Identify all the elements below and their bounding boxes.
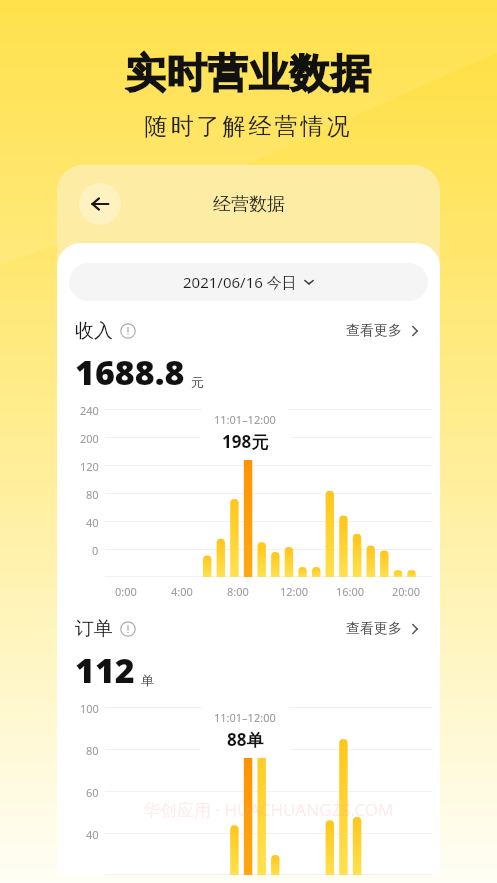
staticText: 0 xyxy=(92,543,99,558)
staticText: 0:00 xyxy=(115,584,137,599)
staticText: 订单 xyxy=(75,617,113,641)
staticText: 80 xyxy=(86,743,99,758)
staticText: 200 xyxy=(80,431,99,446)
button[interactable]: 查看更多 xyxy=(346,322,422,340)
staticText: 2021/06/16 今日 xyxy=(183,272,297,292)
staticText: 随时了解经营情况 xyxy=(0,112,497,141)
staticText: 16:00 xyxy=(336,584,365,599)
staticText: 120 xyxy=(80,459,99,474)
staticText: 20:00 xyxy=(392,584,421,599)
staticText: 11:01–12:00 xyxy=(214,412,276,427)
staticText: 60 xyxy=(86,785,99,800)
staticText: 4:00 xyxy=(171,584,193,599)
staticText: 88单 xyxy=(227,728,264,751)
staticText: 8:00 xyxy=(227,584,249,599)
staticText: 经营数据 xyxy=(213,193,285,216)
button[interactable]: 返回 xyxy=(79,183,121,225)
staticText: 查看更多 xyxy=(346,620,402,638)
staticText: 1688.8 xyxy=(75,349,185,395)
staticText: 查看更多 xyxy=(346,322,402,340)
staticText: 实时营业数据 xyxy=(0,48,497,98)
staticText: 112 xyxy=(75,647,135,693)
staticText: 80 xyxy=(86,487,99,502)
staticText: 收入 xyxy=(75,319,113,343)
staticText: 40 xyxy=(86,827,99,842)
staticText: 华创应用 · HUACHUANGZS.COM xyxy=(143,798,394,821)
staticText: 198元 xyxy=(222,430,269,453)
button[interactable]: 查看更多 xyxy=(346,620,422,638)
staticText: 元 xyxy=(191,374,204,390)
staticText: 11:01–12:00 xyxy=(214,710,276,725)
button[interactable]: 说明 xyxy=(120,323,136,339)
staticText: 40 xyxy=(86,515,99,530)
staticText: 单 xyxy=(141,672,154,688)
staticText: 240 xyxy=(80,403,99,418)
button[interactable]: 2021/06/16 今日 xyxy=(69,263,428,301)
staticText: 100 xyxy=(80,701,99,716)
staticText: 12:00 xyxy=(280,584,309,599)
button[interactable]: 说明 xyxy=(120,621,136,637)
